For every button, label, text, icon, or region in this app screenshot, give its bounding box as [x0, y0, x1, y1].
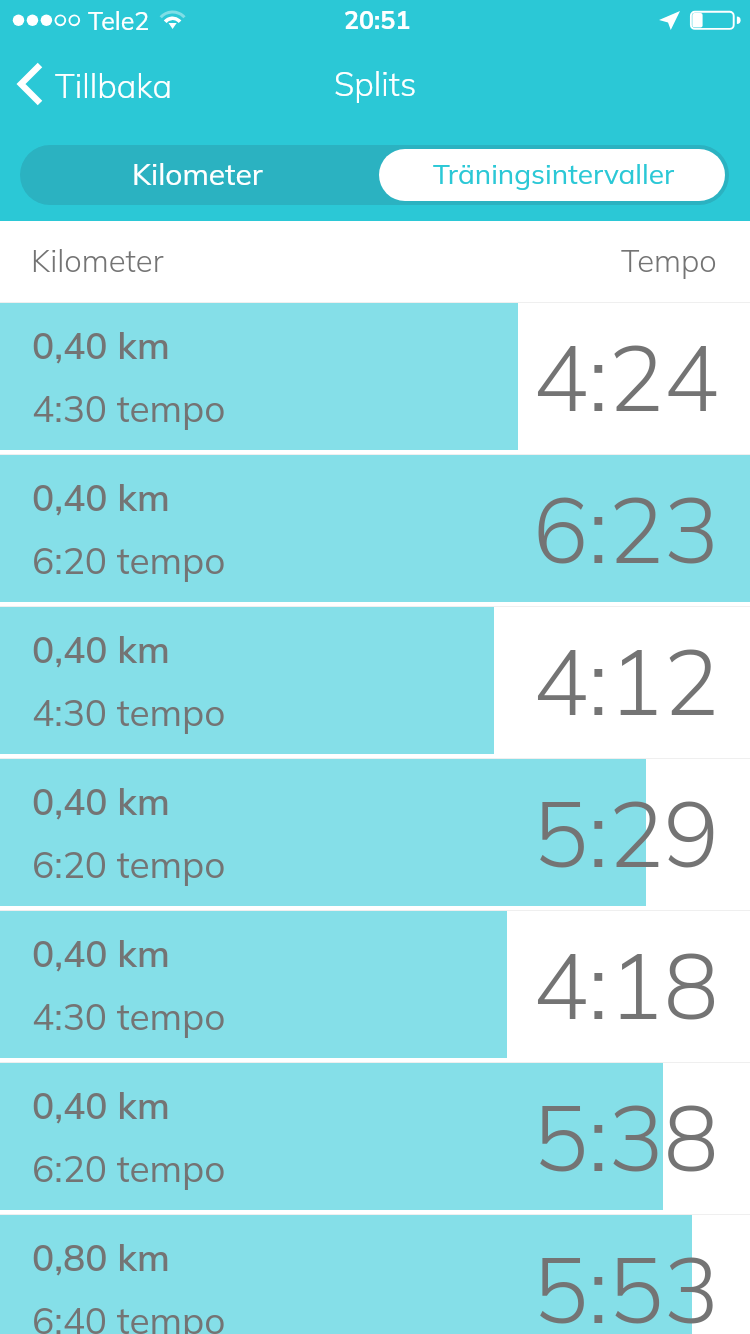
button[interactable]: Back	[6, 57, 187, 111]
button[interactable]: 0,40 km	[0, 759, 750, 906]
button[interactable]: 0,40 km	[0, 455, 750, 602]
button[interactable]: Träningsintervaller	[379, 149, 725, 201]
staticText: 6:40 tempo	[32, 1297, 226, 1334]
other: Battery	[690, 10, 739, 30]
staticText: 6:20 tempo	[32, 1145, 226, 1191]
staticText: 0,40 km	[32, 1082, 170, 1128]
staticText: 0,40 km	[32, 322, 170, 368]
staticText: 0,40 km	[32, 930, 170, 976]
staticText: 4:30 tempo	[32, 385, 226, 431]
other: Location	[659, 11, 680, 30]
staticText: 0,40 km	[32, 778, 170, 824]
staticText: 4:30 tempo	[32, 689, 226, 735]
staticText: 0,40 km	[32, 474, 170, 520]
staticText: 20:51	[344, 4, 411, 35]
staticText: Kilometer	[31, 241, 164, 280]
button[interactable]: 0,40 km	[0, 911, 750, 1058]
button[interactable]: 0,40 km	[0, 303, 750, 450]
staticText: 6:20 tempo	[32, 537, 226, 583]
staticText: Tempo	[621, 241, 717, 280]
staticText: 5:38	[533, 1079, 719, 1194]
button[interactable]: Kilometer	[20, 145, 375, 205]
staticText: 5:53	[533, 1231, 719, 1334]
other: Back	[17, 61, 44, 107]
staticText: 0,40 km	[32, 626, 170, 672]
staticText: 4:18	[533, 927, 719, 1042]
staticText: 4:24	[533, 319, 719, 434]
staticText: 5:29	[533, 775, 719, 890]
staticText: Träningsintervaller	[433, 156, 675, 191]
staticText: Tillbaka	[55, 65, 173, 106]
staticText: 6:20 tempo	[32, 841, 226, 887]
staticText: Kilometer	[132, 155, 263, 193]
staticText: Tele2	[88, 5, 150, 36]
staticText: Splits	[334, 63, 417, 104]
button[interactable]: 0,80 km	[0, 1215, 750, 1334]
staticText: 4:30 tempo	[32, 993, 226, 1039]
button[interactable]: 0,40 km	[0, 607, 750, 754]
button[interactable]: 0,40 km	[0, 1063, 750, 1210]
staticText: 4:12	[533, 623, 719, 738]
staticText: 6:23	[533, 471, 719, 586]
staticText: 0,80 km	[32, 1234, 170, 1280]
